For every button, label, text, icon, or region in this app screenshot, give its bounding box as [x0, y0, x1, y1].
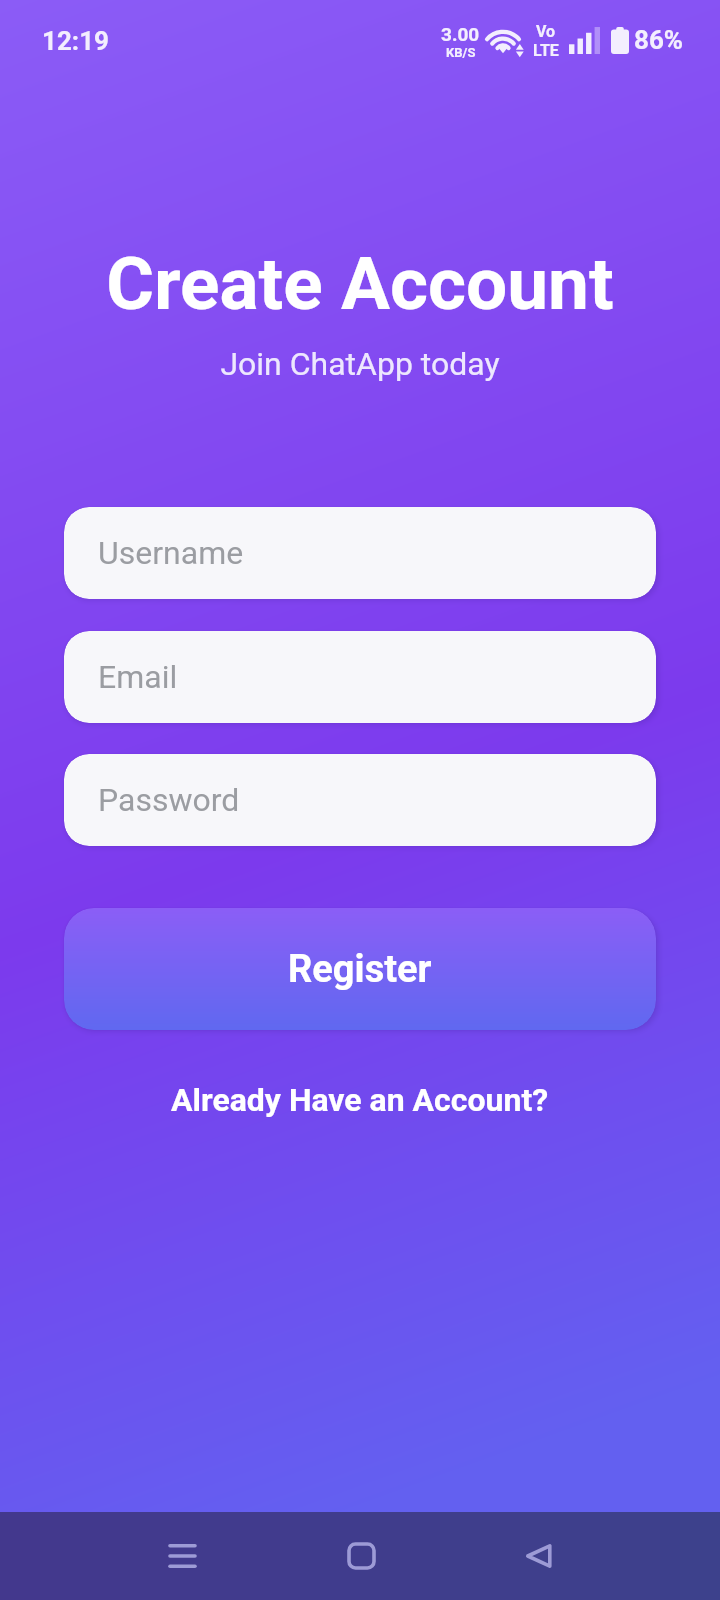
- staticText: Register: [288, 947, 432, 992]
- staticText: Already Have an Account?: [171, 1081, 549, 1119]
- staticText: KB/S: [446, 45, 476, 60]
- button[interactable]: Email: [64, 631, 656, 723]
- staticText: Vo: [536, 22, 556, 41]
- staticText: 3.00: [441, 23, 480, 45]
- staticText: Email: [98, 658, 178, 696]
- staticText: Password: [98, 781, 240, 819]
- button[interactable]: Password: [64, 754, 656, 846]
- staticText: Username: [98, 534, 244, 572]
- button[interactable]: Already Have an Account?: [0, 1072, 720, 1127]
- button[interactable]: Register: [64, 908, 656, 1030]
- button[interactable]: Back: [488, 1512, 588, 1600]
- staticText: 12:19: [42, 26, 109, 56]
- button[interactable]: Recent apps: [132, 1512, 232, 1600]
- button[interactable]: Username: [64, 507, 656, 599]
- staticText: Create Account: [0, 241, 720, 327]
- button[interactable]: Home: [311, 1512, 411, 1600]
- staticText: 86%: [634, 25, 684, 55]
- staticText: Join ChatApp today: [0, 345, 720, 383]
- staticText: LTE: [533, 41, 559, 60]
